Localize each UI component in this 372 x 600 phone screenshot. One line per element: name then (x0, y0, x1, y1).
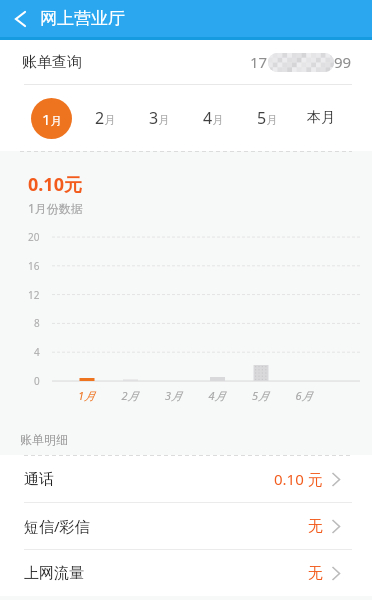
button[interactable]: 5月 (240, 85, 294, 151)
staticText: 通话 (24, 470, 54, 489)
button[interactable]: 1月 (24, 85, 78, 151)
staticText: 本月 (307, 109, 335, 127)
staticText: 0.10 元 (274, 469, 323, 489)
staticText: 网上营业厅 (40, 8, 125, 29)
staticText: 无 (308, 517, 323, 536)
staticText: 上网流量 (24, 564, 84, 583)
staticText: 2月 (95, 107, 116, 129)
button[interactable]: 短信/彩信 (0, 503, 372, 549)
staticText: 短信/彩信 (24, 516, 90, 536)
button[interactable]: 上网流量 (0, 550, 372, 596)
staticText: 1月 (42, 109, 62, 129)
staticText: 无 (308, 564, 323, 583)
staticText: 0.10元 (28, 172, 82, 197)
button[interactable]: 2月 (78, 85, 132, 151)
staticText: 17 (250, 52, 268, 72)
staticText: 4月 (203, 107, 224, 129)
button[interactable]: 通话 (0, 456, 372, 502)
staticText: 账单查询 (22, 53, 82, 72)
button[interactable]: 3月 (132, 85, 186, 151)
button[interactable]: 本月 (294, 85, 348, 151)
staticText: 5月 (257, 107, 278, 129)
staticText: 账单明细 (20, 432, 68, 447)
button[interactable] (0, 0, 40, 37)
staticText: 99 (334, 52, 352, 72)
staticText: 3月 (149, 107, 170, 129)
button[interactable]: 4月 (186, 85, 240, 151)
staticText: 1月份数据 (28, 200, 83, 216)
